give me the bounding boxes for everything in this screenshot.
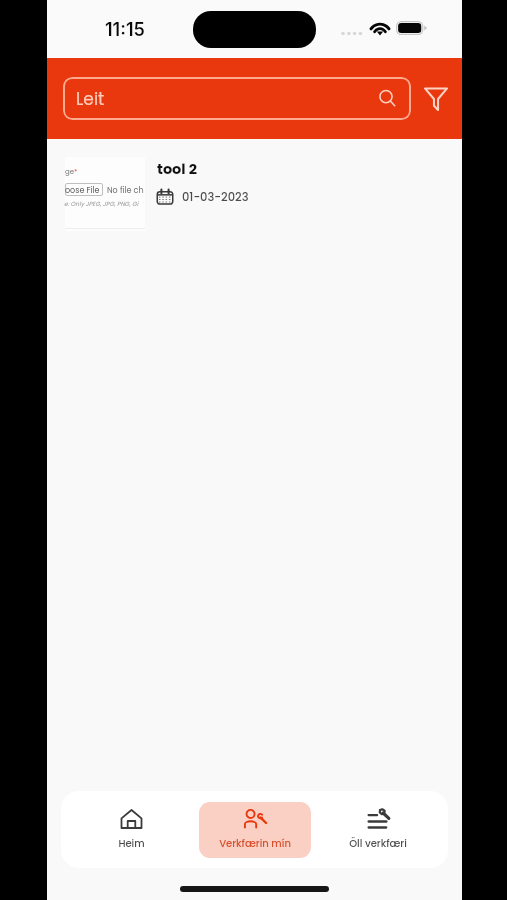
button[interactable]: Heim [75, 802, 187, 858]
staticText: tool 2 [157, 159, 197, 179]
staticText: 11:15 [105, 19, 145, 41]
staticText: No file ch [107, 185, 144, 196]
button[interactable]: ge [47, 139, 462, 233]
staticText: e: Only JPEG, JPG, PNG, Gi [64, 200, 139, 208]
staticText: Heim [118, 836, 145, 850]
staticText: ge [65, 167, 75, 177]
button[interactable]: Verkfærin mín [199, 802, 311, 858]
staticText: oose File [65, 185, 100, 196]
button[interactable]: Leit [63, 77, 411, 120]
staticText: Verkfærin mín [219, 836, 291, 850]
staticText: * [74, 167, 78, 177]
button[interactable]: Öll verkfæri [322, 802, 434, 858]
staticText: Leit [76, 87, 105, 111]
button[interactable]: Filter [417, 77, 454, 120]
staticText: Öll verkfæri [349, 836, 407, 850]
staticText: 01-03-2023 [182, 189, 249, 205]
